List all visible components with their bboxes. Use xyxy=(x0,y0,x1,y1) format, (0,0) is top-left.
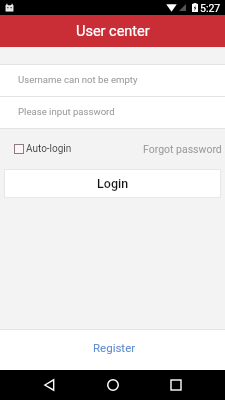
staticText: Auto-login xyxy=(26,143,72,155)
button[interactable]: Register xyxy=(0,330,225,370)
staticText: Username can not be empty xyxy=(18,74,138,85)
button[interactable]: Home xyxy=(98,370,128,400)
staticText: User center xyxy=(76,23,150,40)
staticText: Login xyxy=(97,176,129,191)
button[interactable]: Forgot password xyxy=(143,143,222,155)
button[interactable]: Auto-login xyxy=(14,143,72,155)
staticText: Register xyxy=(93,341,136,354)
staticText: 5:27 xyxy=(200,2,221,14)
button[interactable]: Login xyxy=(4,169,221,198)
staticText: Please input password xyxy=(18,106,115,117)
button[interactable]: Back xyxy=(34,370,64,400)
button[interactable]: Recent apps xyxy=(161,370,191,400)
